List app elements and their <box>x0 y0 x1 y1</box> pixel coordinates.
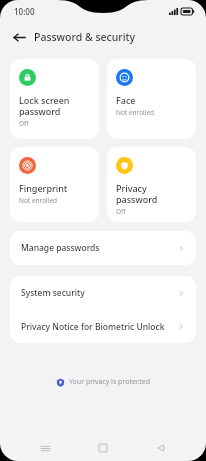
staticText: Face <box>116 94 136 106</box>
staticText: 10:00 <box>14 6 35 17</box>
staticText: System security <box>21 287 85 299</box>
button[interactable]: Manage passwords <box>10 231 196 265</box>
button[interactable]: Back <box>148 435 174 461</box>
staticText: Not enrolled <box>116 108 155 117</box>
staticText: Privacy password <box>116 182 158 205</box>
staticText: Your privacy is protected <box>69 377 151 387</box>
staticText: Password & security <box>34 30 136 44</box>
staticText: Manage passwords <box>21 242 100 254</box>
button[interactable]: Fingerprint <box>10 147 99 222</box>
button[interactable]: Recent apps <box>32 435 58 461</box>
staticText: Lock screen password <box>19 94 70 117</box>
button[interactable]: Lock screen password <box>10 59 99 139</box>
button[interactable]: System security <box>10 276 196 310</box>
staticText: Off <box>116 207 126 216</box>
button[interactable]: Home <box>90 435 116 461</box>
staticText: Off <box>19 119 29 128</box>
staticText: Not enrolled <box>19 196 58 205</box>
staticText: Fingerprint <box>19 182 68 194</box>
button[interactable]: Privacy password <box>107 147 196 222</box>
button[interactable]: Privacy Notice for Biometric Unlock <box>10 310 196 343</box>
button[interactable]: Back <box>8 26 30 48</box>
button[interactable]: Face <box>107 59 196 139</box>
staticText: Privacy Notice for Biometric Unlock <box>21 321 165 333</box>
